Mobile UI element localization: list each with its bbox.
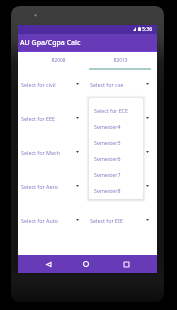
button[interactable]: Back bbox=[38, 255, 58, 273]
button[interactable]: Select for ICE bbox=[90, 169, 149, 203]
button[interactable]: Semester5 bbox=[89, 134, 143, 150]
staticText: Semester4 bbox=[94, 123, 121, 130]
staticText: Semester5 bbox=[94, 139, 121, 146]
button[interactable]: Home bbox=[76, 255, 96, 273]
button[interactable]: AU Gpa/Cgpa Calc bbox=[18, 34, 157, 52]
button[interactable]: Select for cse bbox=[90, 67, 149, 101]
button[interactable]: Select for Auto bbox=[21, 203, 79, 237]
staticText: Select for Aero bbox=[21, 183, 76, 190]
staticText: Select for ECE bbox=[90, 115, 146, 122]
staticText: Select for ICE bbox=[90, 183, 146, 190]
staticText: Semester7 bbox=[94, 171, 121, 178]
button[interactable]: Select for Mech bbox=[21, 135, 79, 169]
button[interactable]: Select for ECE bbox=[89, 102, 143, 118]
staticText: Select for EEE bbox=[21, 115, 76, 122]
staticText: Semester6 bbox=[94, 155, 121, 162]
staticText: Select for IT bbox=[90, 149, 146, 156]
staticText: 5:36 bbox=[142, 26, 153, 33]
button[interactable]: R2013 bbox=[89, 52, 151, 69]
button[interactable]: Semester8 bbox=[89, 182, 143, 198]
staticText: Select for Mech bbox=[21, 149, 76, 156]
button[interactable]: Select for Aero bbox=[21, 169, 79, 203]
button[interactable]: R2008 bbox=[27, 52, 89, 69]
staticText: Select for civil bbox=[21, 81, 76, 88]
staticText: Select for EIE bbox=[90, 217, 146, 224]
button[interactable]: Semester4 bbox=[89, 118, 143, 134]
button[interactable]: Select for EIE bbox=[90, 203, 149, 237]
staticText: R2013 bbox=[113, 57, 128, 64]
staticText: R2008 bbox=[51, 57, 66, 64]
button[interactable]: Semester6 bbox=[89, 150, 143, 166]
staticText: Select for ECE bbox=[94, 107, 128, 114]
button[interactable]: Select for EEE bbox=[21, 101, 79, 135]
button[interactable]: Select for IT bbox=[90, 135, 149, 169]
button[interactable]: Select for ECE bbox=[90, 101, 149, 135]
staticText: Select for cse bbox=[90, 81, 146, 88]
button[interactable]: Semester7 bbox=[89, 166, 143, 182]
staticText: Semester8 bbox=[94, 187, 121, 194]
staticText: Select for Auto bbox=[21, 217, 76, 224]
button[interactable]: Recent apps bbox=[116, 255, 136, 273]
button[interactable]: Select for civil bbox=[21, 67, 79, 101]
staticText: AU Gpa/Cgpa Calc bbox=[20, 38, 81, 48]
